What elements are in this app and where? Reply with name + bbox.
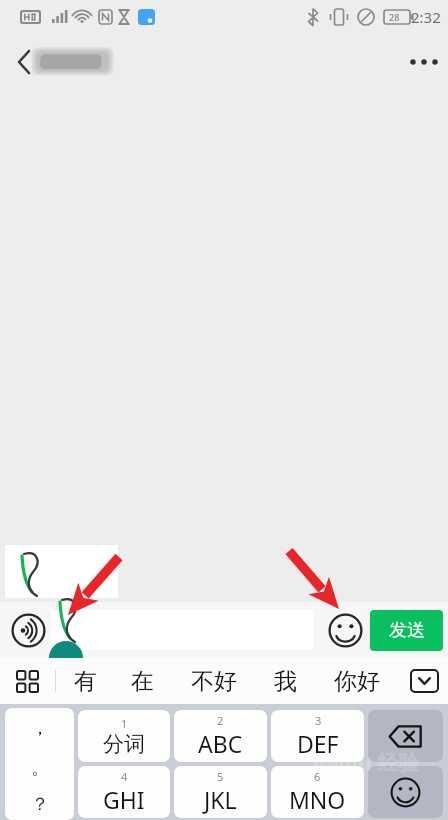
button[interactable]: Expand candidates (400, 658, 448, 704)
button[interactable]: Back (0, 38, 48, 86)
button[interactable]: 你好 (314, 658, 400, 704)
staticText: 在 (131, 667, 154, 696)
staticText: 3 (315, 713, 322, 728)
staticText: 你好 (334, 667, 380, 696)
button[interactable]: 6 (271, 766, 364, 818)
button[interactable]: Emoji keyboard (368, 766, 443, 818)
staticText: 28 (389, 11, 400, 23)
staticText: 1 (121, 716, 128, 731)
button[interactable]: 4 (78, 766, 170, 818)
staticText: ， (31, 717, 49, 740)
button[interactable]: ， (5, 708, 74, 820)
staticText: Baidu 经验 (312, 748, 420, 777)
button[interactable]: Keyboard layouts (0, 658, 55, 704)
staticText: 2:32 (411, 7, 441, 27)
button[interactable]: Voice input (5, 607, 51, 653)
button[interactable]: 我 (257, 658, 314, 704)
staticText: JKL (204, 784, 237, 815)
staticText: 5 (217, 769, 224, 784)
staticText: MNO (289, 784, 346, 815)
button[interactable]: 不好 (171, 658, 257, 704)
button[interactable]: 2 (174, 710, 267, 762)
button[interactable]: 有 (56, 658, 114, 704)
staticText: 发送 (389, 619, 425, 642)
button[interactable]: Emoji (323, 608, 367, 652)
staticText: 2 (217, 713, 224, 728)
staticText: GHI (103, 784, 145, 815)
button[interactable]: 1 (78, 710, 170, 762)
staticText: 分词 (103, 731, 145, 757)
staticText: 6 (314, 769, 321, 784)
button[interactable]: 3 (271, 710, 364, 762)
staticText: 有 (74, 667, 97, 696)
staticText: DEF (297, 728, 339, 759)
button[interactable]: 在 (114, 658, 171, 704)
staticText: ？ (31, 793, 49, 816)
button[interactable]: More options (400, 38, 448, 86)
staticText: ABC (198, 728, 243, 759)
staticText: 我 (274, 667, 297, 696)
button[interactable]: 5 (174, 766, 267, 818)
button[interactable]: Backspace (368, 710, 443, 762)
button[interactable] (51, 610, 314, 650)
staticText: 不好 (191, 667, 237, 696)
staticText: 。 (31, 757, 49, 780)
staticText: 4 (121, 769, 128, 784)
button[interactable]: 发送 (370, 610, 443, 651)
